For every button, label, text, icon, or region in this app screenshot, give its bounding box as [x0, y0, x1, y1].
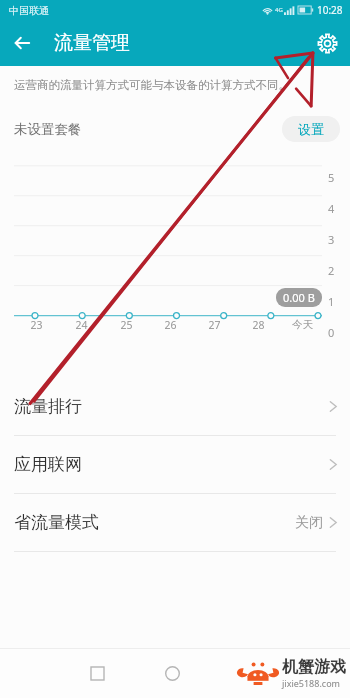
staticText: 运营商的流量计算方式可能与本设备的计算方式不同。: [14, 78, 290, 92]
button[interactable]: Home: [157, 658, 187, 688]
staticText: 中国联通: [9, 4, 49, 17]
staticText: 应用联网: [14, 454, 82, 475]
staticText: jixie5188.com: [282, 677, 340, 689]
staticText: 5: [328, 170, 335, 185]
staticText: 流量管理: [54, 31, 130, 55]
staticText: 28: [252, 318, 265, 332]
button[interactable]: 流量排行: [0, 378, 350, 435]
staticText: 0: [328, 325, 335, 340]
button[interactable]: 应用联网: [0, 436, 350, 493]
staticText: 4: [328, 201, 335, 216]
button[interactable]: Back: [0, 21, 44, 65]
staticText: 省流量模式: [14, 512, 99, 533]
staticText: 未设置套餐: [14, 121, 82, 138]
staticText: 1: [328, 294, 335, 309]
staticText: 24: [75, 318, 88, 332]
staticText: 流量排行: [14, 396, 82, 417]
staticText: 0.00 B: [283, 290, 315, 305]
button[interactable]: 设置: [282, 116, 340, 142]
button[interactable]: 省流量模式: [0, 494, 350, 551]
staticText: 机蟹游戏: [282, 657, 346, 677]
button[interactable]: Recents: [82, 658, 112, 688]
button[interactable]: Settings: [304, 20, 350, 66]
staticText: 4G: [275, 6, 283, 14]
staticText: 26: [164, 318, 177, 332]
staticText: 25: [120, 318, 133, 332]
staticText: 10:28: [317, 3, 343, 17]
staticText: 2: [328, 263, 335, 278]
staticText: 设置: [298, 121, 324, 137]
staticText: 关闭: [295, 514, 323, 532]
staticText: 今天: [292, 318, 313, 331]
staticText: 23: [30, 318, 43, 332]
staticText: 3: [328, 232, 335, 247]
staticText: 27: [208, 318, 221, 332]
